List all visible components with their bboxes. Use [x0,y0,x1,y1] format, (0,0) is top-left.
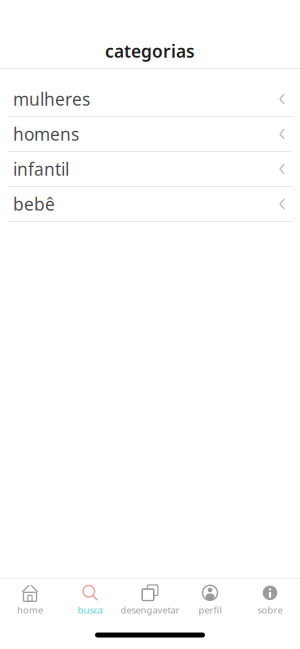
button[interactable]: homens [0,117,300,152]
button[interactable]: infantil [0,152,300,187]
button[interactable]: sobre [240,579,300,621]
staticText: categorias [105,39,195,62]
button[interactable]: busca [60,579,120,621]
staticText: infantil [13,157,69,180]
button[interactable]: perfil [180,579,240,621]
staticText: home [17,604,43,616]
staticText: homens [13,122,79,145]
staticText: sobre [257,604,282,616]
staticText: bebê [13,192,55,215]
button[interactable]: mulheres [0,82,300,117]
button[interactable]: home [0,579,60,621]
staticText: desengavetar [120,604,179,616]
button[interactable]: desengavetar [120,579,180,621]
staticText: busca [77,604,102,616]
staticText: mulheres [13,87,90,110]
staticText: perfil [198,604,221,616]
button[interactable]: bebê [0,187,300,222]
